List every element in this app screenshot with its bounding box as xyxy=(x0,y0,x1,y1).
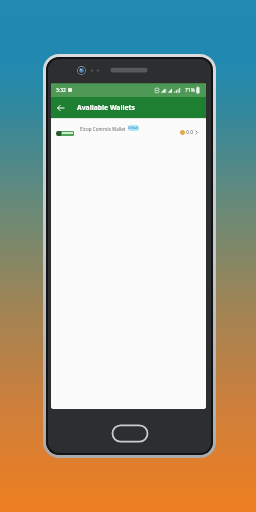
button[interactable] xyxy=(57,104,65,112)
button[interactable]: Elcop Controls Wallet xyxy=(51,118,206,144)
staticText: Elcop Controls Wallet xyxy=(80,126,126,132)
staticText: 0.0 xyxy=(186,129,194,136)
staticText: Default xyxy=(128,126,139,130)
staticText: Available Wallets xyxy=(77,103,135,112)
staticText: 71% xyxy=(185,87,195,94)
staticText: 3:32 xyxy=(56,87,66,94)
